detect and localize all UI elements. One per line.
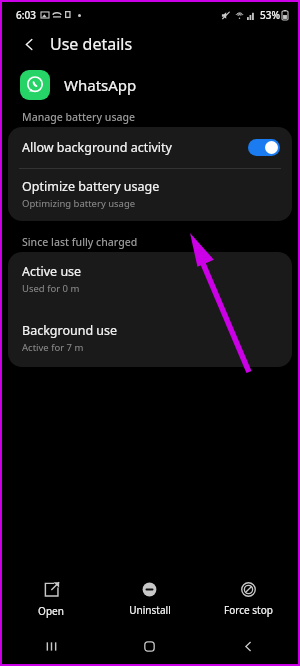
staticText: Use details [50, 33, 133, 55]
staticText: WhatsApp [64, 75, 137, 95]
staticText: Manage battery usage [22, 110, 136, 124]
button[interactable]: Background use [8, 318, 292, 367]
button[interactable]: Active use [8, 252, 292, 305]
staticText: Optimizing battery usage [22, 197, 136, 210]
staticText: Since last fully charged [22, 235, 138, 249]
staticText: Background use [22, 322, 118, 339]
staticText: Uninstall [129, 603, 171, 617]
staticText: Optimize battery usage [22, 178, 160, 195]
staticText: Allow background activity [22, 139, 248, 156]
staticText: Used for 0 m [22, 282, 80, 295]
button[interactable] [248, 139, 280, 156]
button[interactable]: Back [16, 31, 42, 57]
button[interactable]: Uninstall [100, 570, 199, 628]
staticText: Open [38, 604, 64, 618]
staticText: 6:03 [16, 8, 36, 22]
button[interactable]: Back [199, 628, 298, 664]
button[interactable]: Home [100, 628, 199, 664]
button[interactable]: Allow background activity [8, 127, 292, 168]
button[interactable]: Recents [2, 628, 100, 664]
button[interactable]: Open [2, 570, 100, 628]
button[interactable]: Force stop [199, 570, 298, 628]
staticText: Active use [22, 263, 82, 280]
staticText: 53% [260, 8, 280, 22]
button[interactable]: Optimize battery usage [8, 169, 292, 221]
staticText: Active for 7 m [22, 341, 84, 354]
staticText: Force stop [224, 603, 273, 617]
